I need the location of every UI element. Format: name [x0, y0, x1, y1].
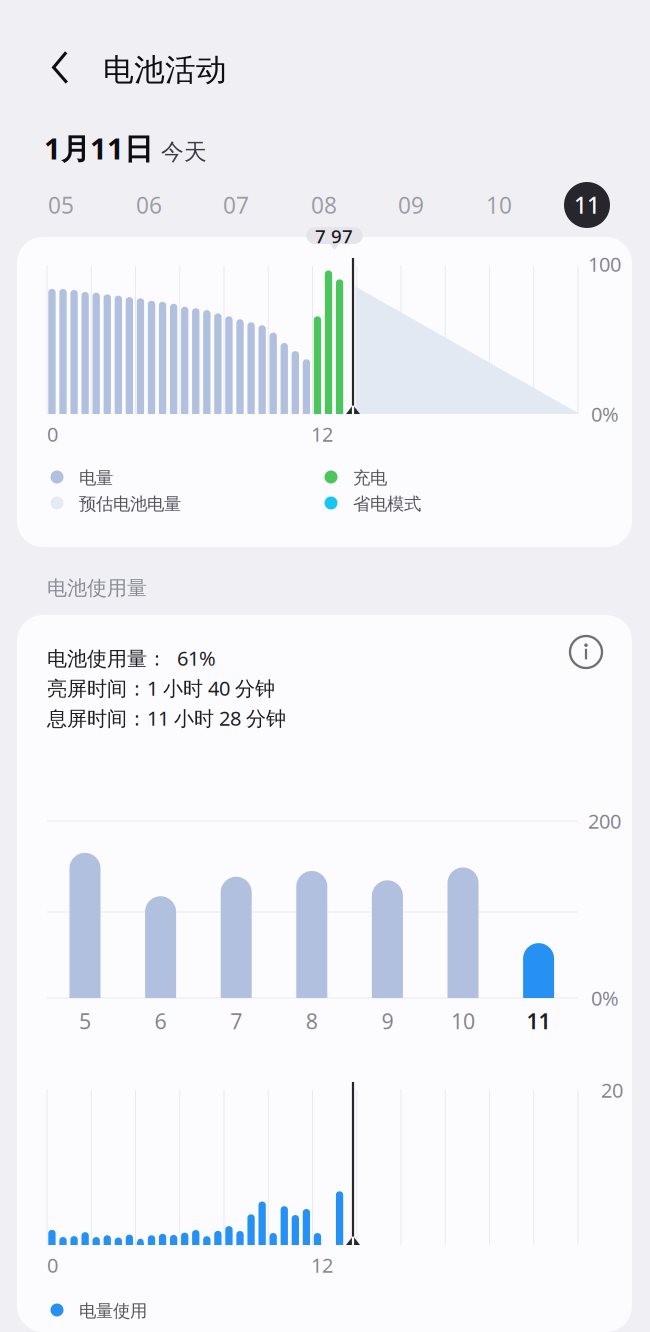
staticText: 09 [398, 190, 424, 220]
staticText: 11 [527, 1007, 551, 1035]
staticText: 充电 [353, 467, 387, 489]
staticText: 6 [155, 1007, 167, 1035]
staticText: 0 [47, 421, 58, 447]
staticText: 电量 [79, 467, 113, 489]
staticText: 12 [311, 1252, 333, 1278]
staticText: 10 [451, 1007, 475, 1035]
button[interactable]: 09 [388, 182, 434, 228]
button[interactable]: 05 [38, 182, 84, 228]
staticText: 05 [48, 190, 74, 220]
staticText: 省电模式 [353, 493, 421, 515]
staticText: 7 [230, 1007, 242, 1035]
staticText: 11 [574, 190, 600, 220]
staticText: 息屏时间：11 小时 28 分钟 [47, 705, 286, 731]
staticText: 06 [136, 190, 162, 220]
staticText: 电池使用量 [47, 576, 147, 600]
staticText: 10 [486, 190, 512, 220]
staticText: 0% [591, 985, 619, 1011]
staticText: 预估电池电量 [79, 493, 181, 515]
staticText: 07 [223, 190, 249, 220]
staticText: 12 [311, 421, 333, 447]
staticText: 8 [306, 1007, 318, 1035]
staticText: 9 [381, 1007, 393, 1035]
staticText: 电池活动 [103, 51, 227, 89]
button[interactable]: Info [570, 636, 602, 668]
staticText: 20 [601, 1077, 623, 1103]
staticText: 7 97 [315, 224, 353, 248]
staticText: 0% [591, 401, 619, 427]
button[interactable]: Back [0, 0, 650, 1332]
button[interactable]: 10 [476, 182, 522, 228]
staticText: 08 [311, 190, 337, 220]
staticText: 200 [588, 808, 621, 834]
staticText: 1月11日 [44, 128, 153, 167]
staticText: 电池使用量： 61% [47, 645, 216, 671]
button[interactable]: 11 [564, 182, 610, 228]
staticText: 100 [588, 251, 621, 277]
staticText: 电量使用 [79, 1300, 147, 1322]
staticText: 5 [79, 1007, 91, 1035]
button[interactable]: 06 [126, 182, 172, 228]
button[interactable]: 08 [301, 182, 347, 228]
staticText: 亮屏时间：1 小时 40 分钟 [47, 675, 275, 701]
staticText: 0 [47, 1252, 58, 1278]
staticText: 今天 [161, 138, 207, 166]
button[interactable]: 07 [213, 182, 259, 228]
